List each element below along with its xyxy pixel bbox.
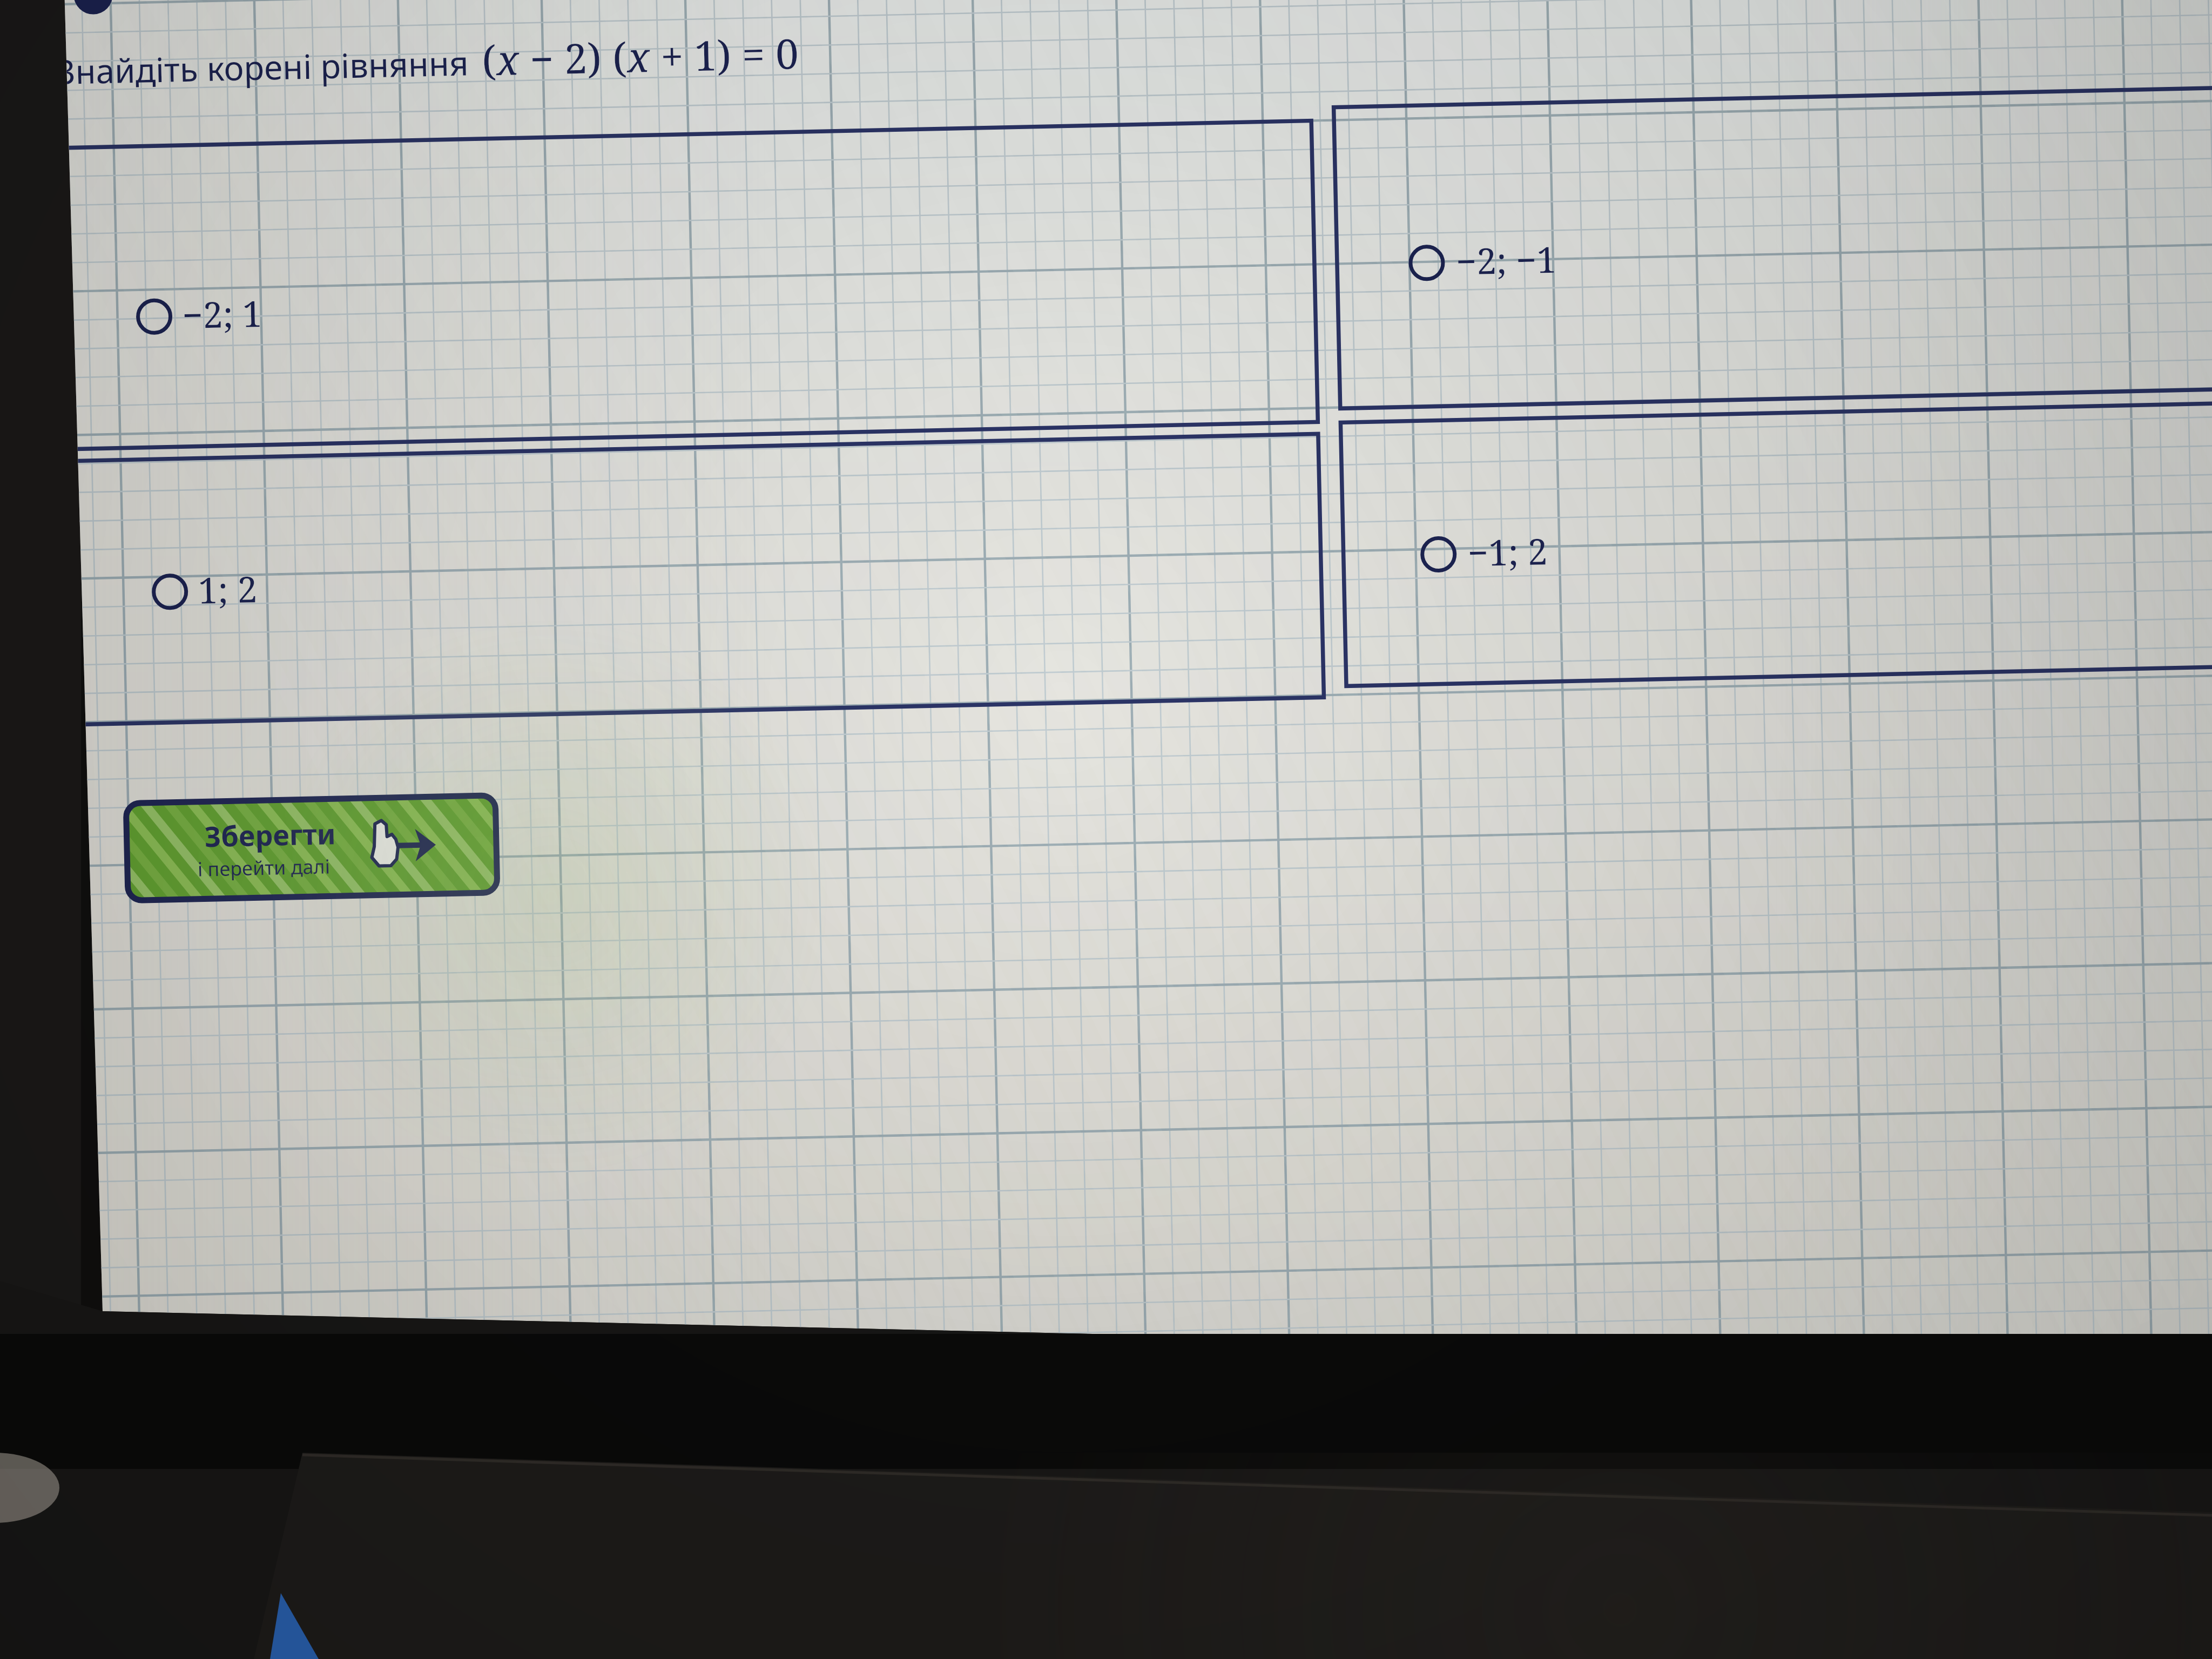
button[interactable]: Варіант відповіді −2; 1: [77, 125, 1323, 427]
button[interactable]: Варіант відповіді 1; 2: [77, 439, 1323, 702]
button[interactable]: Зберегти і перейти далі: [123, 782, 493, 879]
button[interactable]: Варіант відповіді −2; −1: [1346, 112, 2212, 414]
button[interactable]: Варіант відповіді −1; 2: [1346, 428, 2212, 691]
